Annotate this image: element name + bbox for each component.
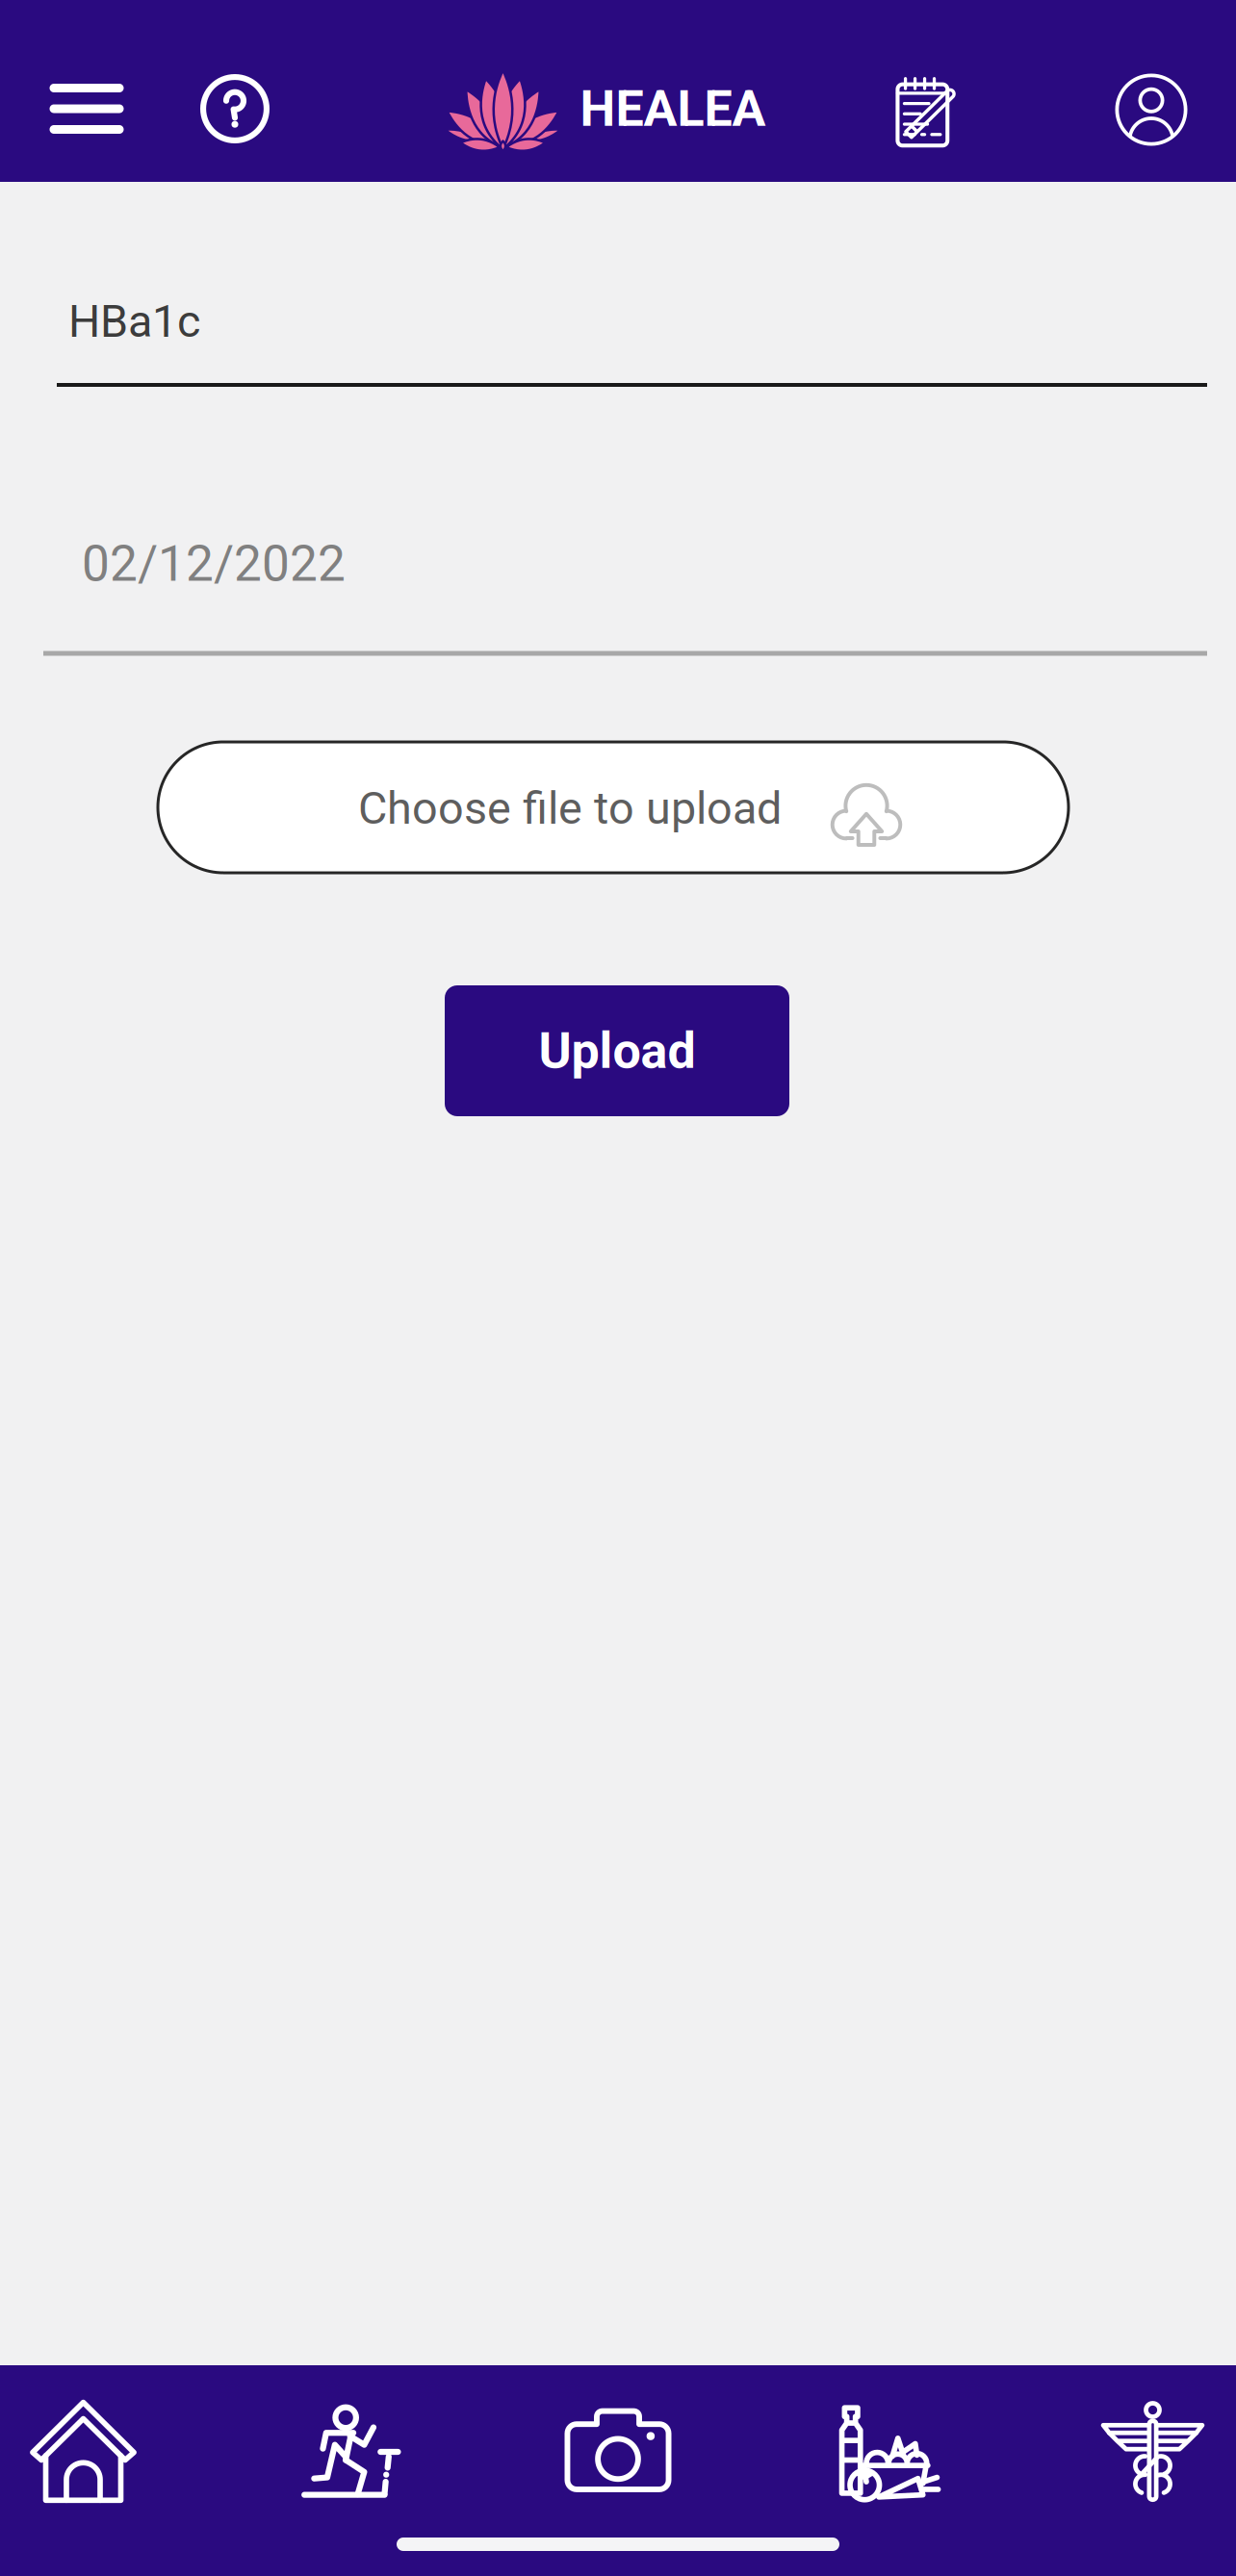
staticText: HBa1c bbox=[68, 295, 200, 348]
button[interactable]: Health bbox=[1098, 2380, 1207, 2524]
button[interactable]: Help bbox=[172, 37, 297, 181]
button[interactable]: HBa1c bbox=[57, 256, 1207, 387]
button[interactable]: Camera bbox=[564, 2380, 672, 2524]
staticText: Upload bbox=[539, 1021, 695, 1080]
staticText: 02/12/2022 bbox=[82, 535, 346, 593]
button[interactable]: Home bbox=[29, 2380, 138, 2524]
button[interactable]: Menu bbox=[14, 37, 159, 181]
button[interactable]: Activity bbox=[296, 2380, 405, 2524]
button[interactable]: Upload bbox=[445, 985, 789, 1116]
staticText: Choose file to upload bbox=[358, 782, 782, 835]
staticText: HEALEA bbox=[580, 79, 766, 138]
button[interactable]: Profile bbox=[1089, 38, 1214, 182]
button[interactable]: Nutrition bbox=[831, 2380, 940, 2524]
button[interactable]: 02/12/2022 bbox=[43, 523, 1207, 654]
button[interactable]: Choose file to upload bbox=[158, 742, 1069, 873]
button[interactable]: Notes bbox=[866, 38, 991, 183]
